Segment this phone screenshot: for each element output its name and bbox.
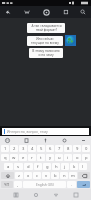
button[interactable]: s (14, 163, 23, 170)
button[interactable]: Search (78, 7, 88, 17)
staticText: 8 (67, 146, 70, 152)
button[interactable]: 9 (73, 145, 81, 152)
button[interactable]: 4 (28, 145, 36, 152)
staticText: 9 (76, 146, 79, 152)
staticText: m (71, 173, 75, 179)
staticText: В этому написано и по чему (32, 49, 60, 57)
button[interactable]: Home (31, 190, 40, 199)
button[interactable]: 5 (37, 145, 45, 152)
button[interactable]: Record (41, 7, 52, 18)
staticText: r (31, 155, 33, 161)
staticText: z (18, 173, 20, 179)
button[interactable]: n (60, 172, 68, 179)
button[interactable]: Emoji (4, 137, 11, 144)
button[interactable]: q (1, 154, 9, 161)
button[interactable]: m (69, 172, 77, 179)
button[interactable]: a (4, 163, 13, 170)
button[interactable]: 0 (82, 145, 90, 152)
button[interactable]: k (70, 163, 78, 170)
staticText: ЧП (4, 182, 10, 187)
button[interactable]: Или сейчас текущие по всему (27, 36, 63, 46)
button[interactable]: 1 (1, 145, 9, 152)
staticText: p (85, 155, 88, 161)
button[interactable]: e (19, 154, 27, 161)
button[interactable]: Back (51, 190, 60, 199)
staticText: x (27, 173, 30, 179)
staticText: a (7, 164, 10, 170)
button[interactable]: c (33, 172, 41, 179)
button[interactable]: d (24, 163, 33, 170)
staticText: t (40, 155, 42, 161)
button[interactable]: t (37, 154, 45, 161)
button[interactable]: w (10, 154, 18, 161)
button[interactable]: Back (3, 7, 13, 17)
button[interactable]: 8 (64, 145, 72, 152)
button[interactable]: Screenshot (71, 190, 80, 199)
button[interactable]: 2 (10, 145, 18, 152)
button[interactable]: . (67, 181, 76, 188)
staticText: А так складывается твой формат? (31, 24, 62, 32)
staticText: e (22, 155, 25, 161)
button[interactable]: Voice input (42, 137, 49, 144)
button[interactable]: Space (23, 181, 66, 188)
staticText: 6 (49, 146, 52, 152)
button[interactable]: Clipboard (23, 137, 30, 144)
button[interactable]: Enter (77, 181, 90, 188)
button[interactable]: ЧП (1, 181, 13, 188)
button[interactable]: u (55, 154, 63, 161)
staticText: 2 (13, 146, 16, 152)
button[interactable]: В этому написано и по чему (29, 48, 63, 58)
button[interactable]: More (80, 137, 87, 144)
button[interactable]: p (82, 154, 90, 161)
staticText: 0 (85, 146, 88, 152)
staticText: f (37, 164, 39, 170)
button[interactable]: Backspace (78, 172, 90, 179)
staticText: j (64, 164, 66, 170)
button[interactable]: Copy (61, 7, 71, 17)
staticText: l (82, 164, 84, 170)
button[interactable]: А так складывается твой формат? (27, 23, 65, 33)
staticText: w (12, 155, 16, 161)
button[interactable]: Recents (11, 190, 20, 199)
staticText: h (55, 164, 58, 170)
button[interactable]: 6 (46, 145, 54, 152)
staticText: 7 (58, 146, 61, 152)
button[interactable]: , (14, 181, 22, 188)
staticText: Или сейчас текущие по всему (31, 37, 59, 45)
staticText: 4 (31, 146, 34, 152)
staticText: 3 (22, 146, 25, 152)
staticText: English (US) (36, 183, 54, 187)
button[interactable]: Translate (22, 7, 32, 17)
staticText: Интересно, вопрос, тему (7, 129, 48, 134)
button[interactable]: v (42, 172, 50, 179)
button[interactable]: f (34, 163, 42, 170)
button[interactable]: h (52, 163, 60, 170)
button[interactable]: b (51, 172, 59, 179)
button[interactable]: i (64, 154, 72, 161)
button[interactable]: z (15, 172, 23, 179)
staticText: i (67, 155, 69, 161)
button[interactable]: x (24, 172, 32, 179)
staticText: g (46, 164, 49, 170)
staticText: y (49, 155, 52, 161)
staticText: k (73, 164, 76, 170)
button[interactable]: g (43, 163, 51, 170)
button[interactable]: l (79, 163, 87, 170)
staticText: . (71, 182, 73, 188)
button[interactable]: Settings (61, 137, 68, 144)
staticText: n (63, 173, 66, 179)
staticText: o (76, 155, 79, 161)
button[interactable]: Globe (65, 35, 76, 46)
button[interactable]: 7 (55, 145, 63, 152)
button[interactable]: o (73, 154, 81, 161)
button[interactable]: Интересно, вопрос, тему (2, 128, 89, 135)
button[interactable]: r (28, 154, 36, 161)
staticText: 5 (40, 146, 43, 152)
button[interactable]: Shift (1, 172, 14, 179)
staticText: , (17, 182, 19, 188)
staticText: d (27, 164, 30, 170)
button[interactable]: y (46, 154, 54, 161)
button[interactable]: j (61, 163, 69, 170)
button[interactable]: 3 (19, 145, 27, 152)
staticText: v (45, 173, 48, 179)
